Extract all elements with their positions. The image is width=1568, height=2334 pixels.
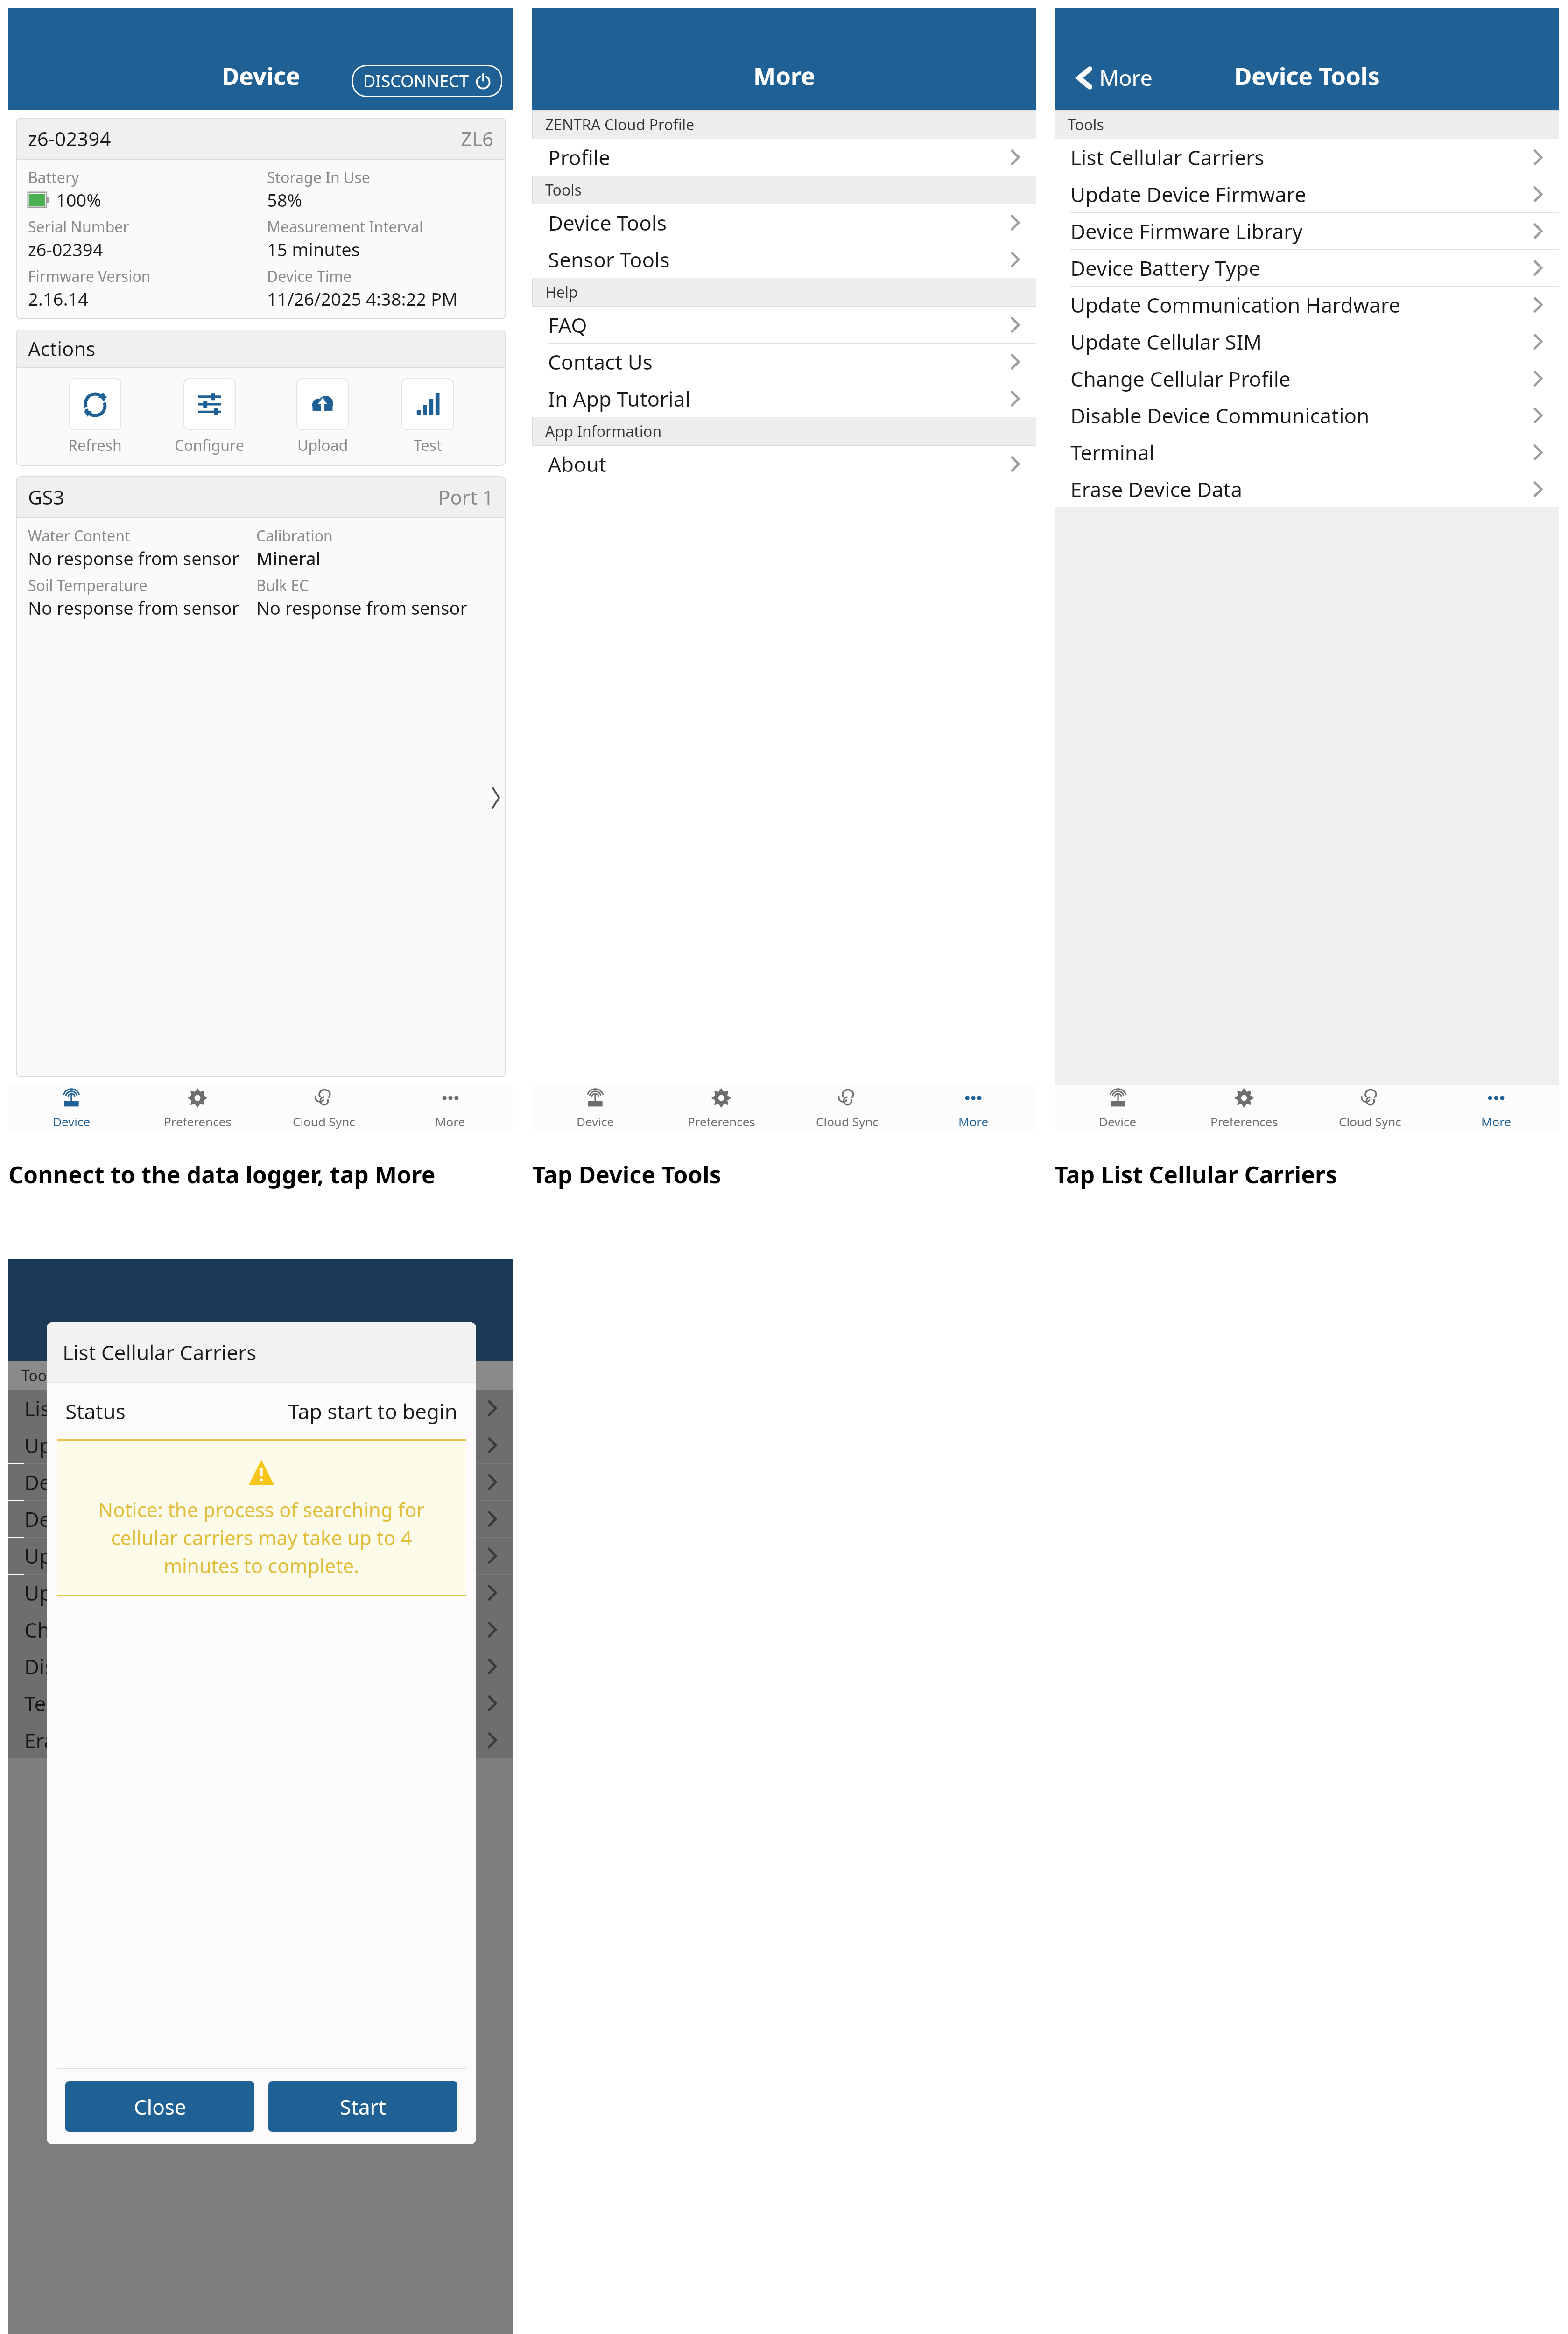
button[interactable]: Cloud Sync [260,1085,387,1132]
staticText: Bulk EC [256,575,309,596]
staticText: Mineral [256,546,321,570]
button[interactable]: More [1055,59,1162,96]
staticText: Tap Device Tools [532,1159,721,1190]
staticText: Tap List Cellular Carriers [1055,1159,1337,1190]
button[interactable]: DISCONNECT [352,65,502,97]
staticText: ZL6 [461,125,494,152]
staticText: Contact Us [548,348,1010,376]
staticText: Notice: the process of searching for cel… [72,1496,451,1579]
staticText: Tools [21,1365,58,1386]
staticText: Cloud Sync [816,1113,879,1130]
button[interactable]: Device [532,1085,658,1132]
staticText: Update Communication Hardware [24,1542,487,1570]
staticText: More [753,59,816,91]
staticText: DISCONNECT [363,70,469,92]
staticText: Firmware Version [28,266,151,287]
button[interactable]: Upload [296,378,349,456]
button[interactable]: Preferences [1181,1085,1307,1132]
staticText: Disable Device Communication [1070,401,1533,429]
button[interactable]: FAQ [532,307,1036,343]
staticText: z6-02394 [28,125,111,152]
staticText: Preferences [688,1113,755,1130]
staticText: Device Tools [1234,59,1380,91]
staticText: 11/26/2025 4:38:22 PM [267,287,458,311]
button[interactable]: Configure [175,378,244,456]
button[interactable]: About [532,446,1036,482]
staticText: Update Cellular SIM [24,1579,487,1607]
staticText: Disable Device Communication [24,1652,487,1680]
button[interactable]: Cloud Sync [784,1085,910,1132]
button[interactable]: Disable Device Communication [1055,397,1559,434]
staticText: Device Tools [548,209,1010,237]
staticText: More [1481,1113,1512,1130]
staticText: Start [340,2093,386,2121]
staticText: Calibration [256,526,333,546]
staticText: Update Communication Hardware [1070,291,1533,319]
button[interactable]: Device [8,1085,134,1132]
button[interactable]: List Cellular Carriers [1055,139,1559,176]
button[interactable]: Device Tools [532,204,1036,241]
staticText: Device [53,1113,91,1130]
button[interactable]: More [910,1085,1036,1132]
staticText: Test [414,435,442,456]
staticText: Actions [28,335,96,362]
staticText: Update Device Firmware [1070,180,1533,208]
staticText: 15 minutes [267,237,360,261]
staticText: About [548,450,1010,478]
button[interactable]: Preferences [134,1085,260,1132]
staticText: Change Cellular Profile [1070,365,1533,393]
staticText: Water Content [28,526,130,546]
button[interactable]: Cloud Sync [1307,1085,1433,1132]
staticText: List Cellular Carriers [24,1394,487,1422]
button[interactable]: More [1433,1085,1559,1132]
staticText: Configure [175,435,244,456]
staticText: Profile [548,143,1010,171]
button[interactable]: Change Cellular Profile [1055,360,1559,397]
staticText: Cloud Sync [293,1113,355,1130]
button[interactable]: Refresh [68,378,122,456]
button[interactable]: In App Tutorial [532,380,1036,417]
button[interactable]: Terminal [1055,434,1559,471]
button[interactable]: Close [65,2081,254,2132]
staticText: Help [545,282,578,302]
staticText: 2.16.14 [28,287,89,311]
staticText: Upload [297,435,348,456]
staticText: Device Firmware Library [24,1468,487,1496]
staticText: Terminal [1070,438,1533,466]
staticText: No response from sensor [28,596,239,620]
staticText: App Information [545,421,662,442]
staticText: 58% [267,188,302,212]
staticText: FAQ [548,311,1010,339]
staticText: Device [222,59,300,91]
button[interactable]: Contact Us [532,344,1036,380]
button[interactable]: Sensor Tools [532,241,1036,278]
button[interactable]: Erase Device Data [1055,471,1559,507]
staticText: Port 1 [438,484,494,510]
button[interactable]: Profile [532,139,1036,176]
staticText: Terminal [24,1689,487,1717]
staticText: Serial Number [28,217,129,237]
button[interactable]: Device [1055,1085,1181,1132]
button[interactable]: Update Communication Hardware [1055,287,1559,323]
button[interactable]: Device Firmware Library [1055,213,1559,249]
staticText: No response from sensor [256,596,468,620]
staticText: Preferences [164,1113,232,1130]
button[interactable]: Update Cellular SIM [1055,323,1559,360]
button[interactable]: Start [268,2081,457,2132]
button[interactable]: More [387,1085,513,1132]
button[interactable]: Update Device Firmware [1055,176,1559,212]
staticText: Tools [545,180,582,200]
staticText: In App Tutorial [548,385,1010,413]
button[interactable]: Preferences [658,1085,784,1132]
staticText: z6-02394 [28,237,103,261]
staticText: Sensor Tools [548,246,1010,274]
staticText: More [435,1113,465,1130]
staticText: More [958,1113,989,1130]
staticText: Cloud Sync [1339,1113,1401,1130]
staticText: Soil Temperature [28,575,148,596]
button[interactable]: Device Battery Type [1055,250,1559,286]
staticText: GS3 [28,484,64,510]
button[interactable]: Test [401,378,454,456]
staticText: Battery [28,167,79,188]
staticText: 100% [56,188,101,212]
